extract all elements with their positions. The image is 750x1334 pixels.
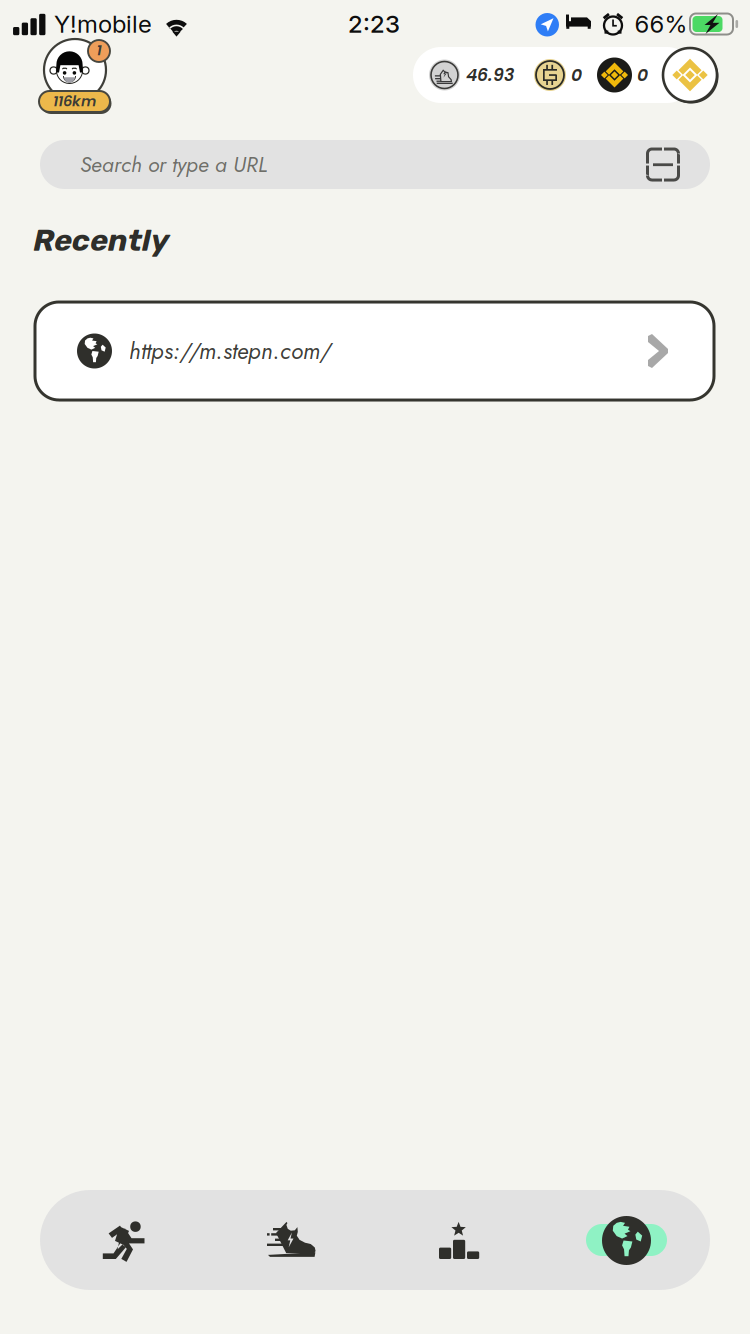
staticText: Y!mobile: [54, 9, 152, 38]
button[interactable]: Sneakers: [207, 1190, 375, 1290]
button[interactable]: 46.93: [429, 47, 516, 103]
button[interactable]: Run: [40, 1190, 207, 1290]
staticText: 1: [96, 40, 101, 60]
staticText: Recently: [33, 222, 170, 258]
button[interactable]: Browser: [542, 1190, 710, 1290]
staticText: 0: [571, 63, 582, 87]
staticText: 2:23: [348, 9, 400, 38]
button[interactable]: 0: [597, 47, 650, 103]
staticText: Search or type a URL: [80, 149, 267, 180]
button[interactable]: Profile: [39, 36, 115, 116]
button[interactable]: Search or type a URL: [40, 140, 710, 189]
staticText: 46.93: [466, 63, 514, 87]
staticText: https://m.stepn.com/: [129, 335, 331, 367]
staticText: 0: [637, 63, 648, 87]
button[interactable]: Leaderboard: [375, 1190, 542, 1290]
button[interactable]: Wallet: [663, 48, 721, 106]
button[interactable]: 0: [534, 47, 584, 103]
staticText: 116km: [53, 91, 96, 111]
staticText: 66%: [634, 9, 687, 38]
button[interactable]: https://m.stepn.com/: [35, 302, 714, 400]
